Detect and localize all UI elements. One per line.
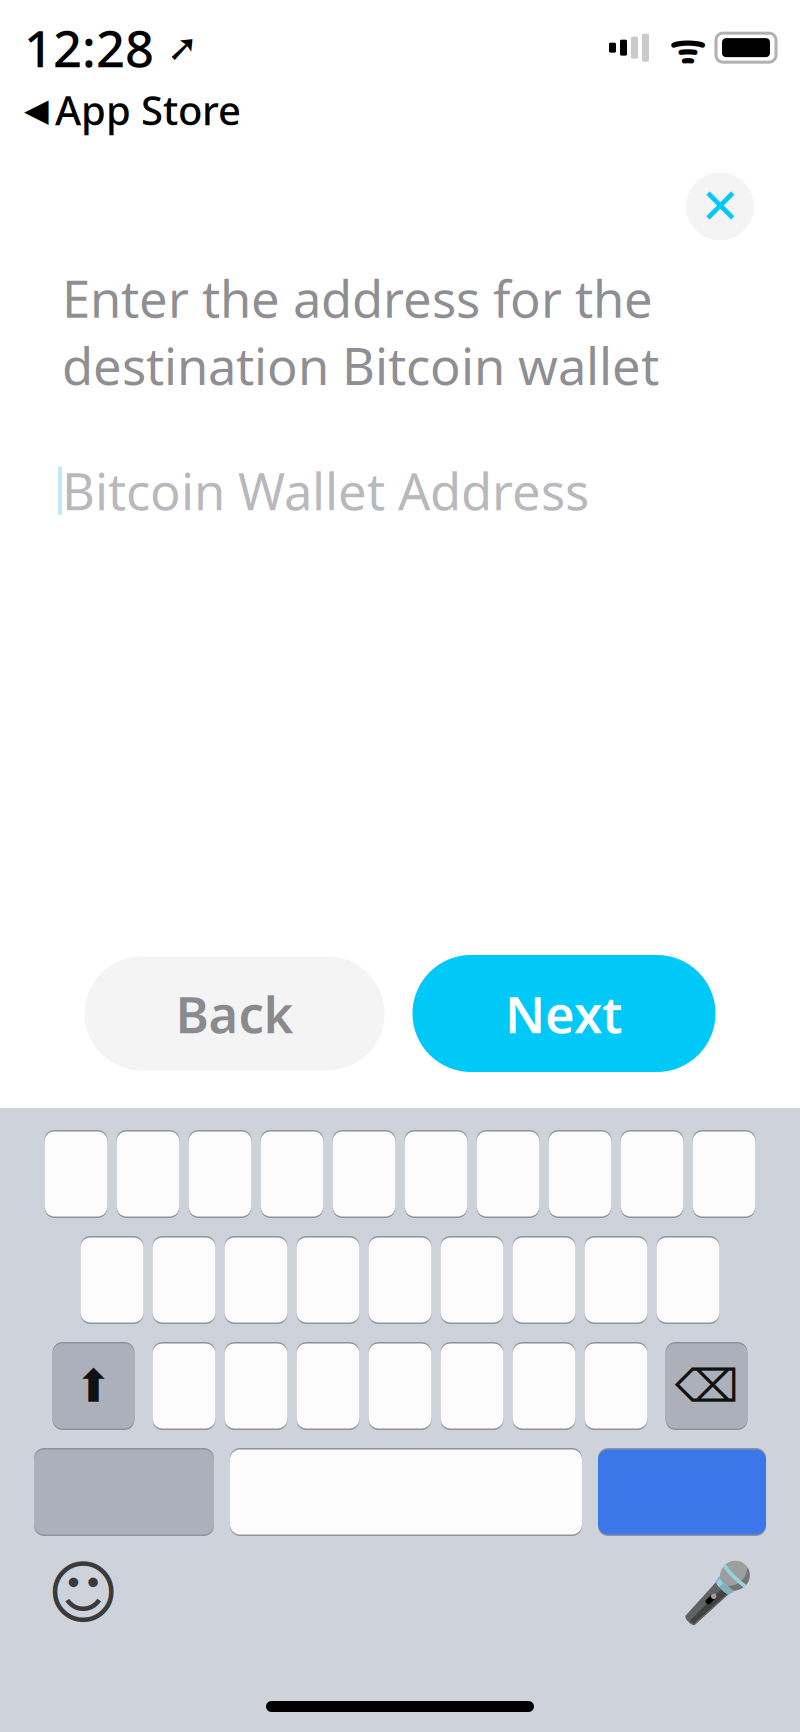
button[interactable]: f [296,1236,359,1324]
button[interactable]: Back [84,956,384,1070]
button[interactable]: w [116,1130,179,1218]
button[interactable]: Emoji [48,1558,118,1628]
staticText: Back [175,980,293,1047]
button[interactable]: r [260,1130,323,1218]
staticText: App Store [55,83,241,136]
button[interactable]: x [224,1342,287,1430]
button[interactable]: g [368,1236,431,1324]
staticText: Next [505,980,623,1047]
button[interactable]: c [296,1342,359,1430]
staticText: ⌫ [674,1360,738,1412]
staticText: 🎤 [680,1559,753,1626]
button[interactable]: j [512,1236,575,1324]
button[interactable]: Close [686,172,754,240]
button[interactable]: b [440,1342,503,1430]
button[interactable]: Next [412,955,715,1072]
button[interactable]: d [224,1236,287,1324]
button[interactable]: y [404,1130,467,1218]
button[interactable]: t [332,1130,395,1218]
staticText: 12:28 [24,14,154,81]
button[interactable]: s [152,1236,215,1324]
button[interactable]: Shift [52,1342,134,1430]
staticText: ◀ [24,92,49,128]
button[interactable]: done [598,1448,766,1536]
button[interactable]: q [44,1130,107,1218]
staticText: ⬆ [74,1360,112,1412]
button[interactable]: u [476,1130,539,1218]
button[interactable]: 123 [34,1448,214,1536]
button[interactable]: v [368,1342,431,1430]
button[interactable]: l [656,1236,719,1324]
button[interactable]: z [152,1342,215,1430]
button[interactable]: k [584,1236,647,1324]
button[interactable]: h [440,1236,503,1324]
button[interactable]: space [230,1448,582,1536]
staticText: Enter the address for the destination Bi… [62,264,659,399]
button[interactable]: o [620,1130,683,1218]
staticText: ᯤ [649,21,706,74]
staticText: ➚ [154,26,198,69]
button[interactable]: Dictation [682,1558,752,1628]
button[interactable]: e [188,1130,251,1218]
button[interactable]: m [584,1342,647,1430]
staticText: ✕ [700,179,740,234]
button[interactable]: Delete [665,1342,747,1430]
staticText: ☺ [47,1554,119,1632]
button[interactable]: n [512,1342,575,1430]
button[interactable]: i [548,1130,611,1218]
button[interactable]: p [692,1130,755,1218]
staticText: Bitcoin Wallet Address [62,457,589,524]
button[interactable]: a [80,1236,143,1324]
